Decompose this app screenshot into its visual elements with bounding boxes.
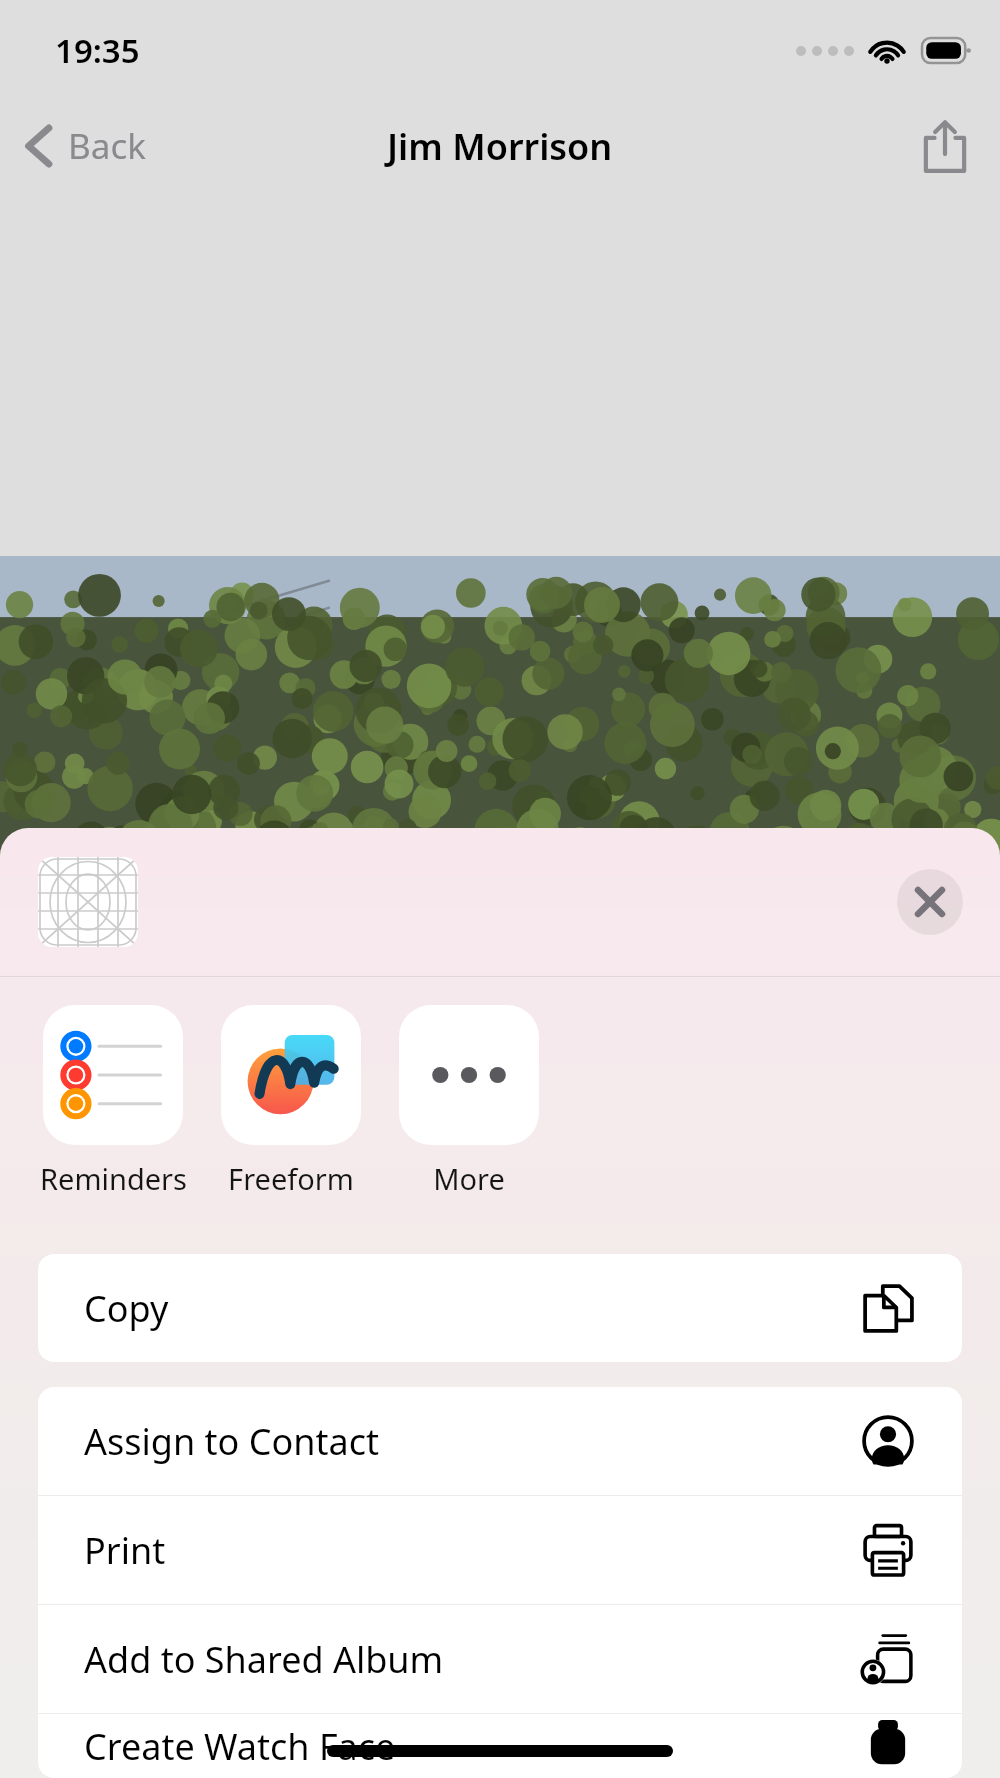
button[interactable]: Add to Shared Album: [38, 1605, 962, 1713]
button[interactable]: Copy: [38, 1254, 962, 1362]
button[interactable]: Preview: [38, 857, 138, 947]
button[interactable]: Share: [916, 117, 974, 175]
staticText: 19:35: [55, 28, 140, 73]
staticText: Jim Morrison: [387, 122, 613, 171]
staticText: Freeform: [228, 1159, 354, 1198]
staticText: Copy: [84, 1284, 169, 1333]
staticText: Back: [68, 122, 146, 170]
staticText: Add to Shared Album: [84, 1635, 444, 1684]
staticText: More: [433, 1159, 505, 1198]
staticText: Assign to Contact: [84, 1417, 379, 1466]
button[interactable]: Freeform: [216, 1005, 366, 1198]
staticText: Reminders: [40, 1159, 187, 1198]
button[interactable]: Close: [897, 869, 963, 935]
button[interactable]: Create Watch Face: [38, 1714, 962, 1778]
button[interactable]: Back: [20, 112, 152, 180]
button[interactable]: Print: [38, 1496, 962, 1604]
staticText: Create Watch Face: [84, 1722, 396, 1771]
button[interactable]: Reminders: [38, 1005, 188, 1198]
button[interactable]: More: [394, 1005, 544, 1198]
staticText: Print: [84, 1526, 166, 1575]
button[interactable]: Assign to Contact: [38, 1387, 962, 1495]
